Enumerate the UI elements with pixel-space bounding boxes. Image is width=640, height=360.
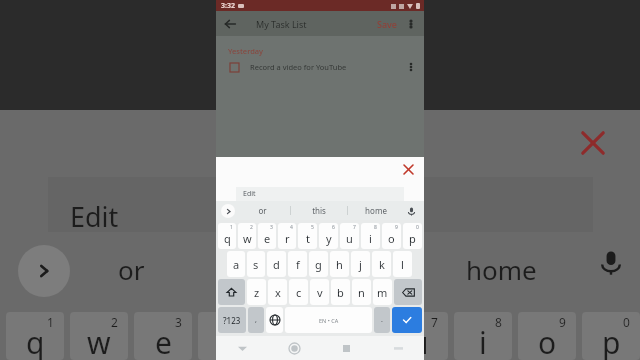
staticText: 2 xyxy=(250,224,253,231)
staticText: Edit xyxy=(243,189,256,199)
staticText: p xyxy=(409,231,416,246)
button[interactable]: s xyxy=(247,251,265,277)
staticText: y xyxy=(347,322,363,360)
button[interactable]: 5 xyxy=(298,223,317,249)
staticText: 7 xyxy=(353,224,356,231)
staticText: 6 xyxy=(367,314,374,330)
button[interactable]: k xyxy=(372,251,391,277)
button[interactable]: g xyxy=(309,251,328,277)
staticText: e xyxy=(264,231,271,246)
button[interactable]: Done xyxy=(392,307,422,333)
button[interactable]: x xyxy=(268,279,287,305)
button[interactable]: 6 xyxy=(319,223,338,249)
staticText: c xyxy=(296,285,302,300)
staticText: Save xyxy=(377,18,398,30)
button[interactable]: this xyxy=(291,201,347,220)
button[interactable]: m xyxy=(373,279,392,305)
button[interactable]: f xyxy=(288,251,307,277)
button[interactable]: Voice input xyxy=(404,204,418,218)
staticText: l xyxy=(401,257,404,272)
button[interactable]: EN • CA xyxy=(285,307,372,333)
staticText: s xyxy=(253,257,259,272)
button[interactable]: Task checkbox xyxy=(216,56,424,78)
button[interactable]: ?123 xyxy=(218,307,246,333)
staticText: d xyxy=(273,257,280,272)
button[interactable]: home xyxy=(348,201,404,220)
button[interactable]: 0 xyxy=(403,223,422,249)
button[interactable]: Save xyxy=(375,15,400,33)
button[interactable]: 3 xyxy=(258,223,276,249)
button[interactable]: 7 xyxy=(340,223,359,249)
button[interactable]: Home xyxy=(268,336,320,360)
button[interactable]: l xyxy=(393,251,412,277)
button[interactable]: 9 xyxy=(382,223,401,249)
button[interactable]: Back xyxy=(220,14,240,34)
button[interactable]: Recents xyxy=(320,336,372,360)
button[interactable]: Backspace xyxy=(394,279,422,305)
button[interactable]: a xyxy=(227,251,245,277)
staticText: w xyxy=(243,231,252,246)
button[interactable]: 2 xyxy=(238,223,256,249)
staticText: z xyxy=(254,285,260,300)
staticText: x xyxy=(275,285,281,300)
staticText: r xyxy=(285,231,290,246)
button[interactable]: 4 xyxy=(278,223,296,249)
button[interactable]: Task checkbox xyxy=(230,63,239,72)
staticText: or xyxy=(118,252,145,287)
button[interactable]: j xyxy=(351,251,370,277)
button[interactable]: Keyboard layout xyxy=(372,336,424,360)
staticText: , xyxy=(255,315,257,325)
button[interactable]: Change language xyxy=(266,307,283,333)
staticText: 9 xyxy=(395,224,398,231)
staticText: 1 xyxy=(230,224,233,231)
staticText: Edit xyxy=(70,198,119,235)
staticText: m xyxy=(377,285,388,300)
button[interactable]: Expand suggestions xyxy=(221,204,235,218)
staticText: n xyxy=(358,285,365,300)
button[interactable]: More options xyxy=(402,15,420,33)
staticText: . xyxy=(381,315,383,325)
button[interactable]: v xyxy=(310,279,329,305)
button[interactable]: c xyxy=(289,279,308,305)
staticText: q xyxy=(26,322,45,360)
staticText: Record a video for YouTube xyxy=(250,62,347,72)
staticText: home xyxy=(466,252,537,287)
button[interactable]: b xyxy=(331,279,350,305)
button[interactable]: Period xyxy=(374,307,390,333)
staticText: this xyxy=(312,205,326,216)
staticText: 3:32 xyxy=(221,1,235,11)
button[interactable]: Task options xyxy=(403,59,419,75)
button[interactable]: Hide keyboard xyxy=(216,336,268,360)
staticText: My Task List xyxy=(256,18,307,30)
staticText: t xyxy=(306,231,310,246)
button[interactable]: Shift xyxy=(218,279,245,305)
button[interactable]: d xyxy=(267,251,286,277)
button[interactable]: z xyxy=(247,279,266,305)
staticText: ?123 xyxy=(223,315,241,326)
button[interactable]: n xyxy=(352,279,371,305)
button[interactable]: Close xyxy=(401,162,415,176)
button[interactable]: or xyxy=(235,201,290,220)
staticText: 4 xyxy=(239,314,246,330)
staticText: 9 xyxy=(559,314,566,330)
staticText: h xyxy=(336,257,343,272)
staticText: v xyxy=(317,285,323,300)
button[interactable]: 8 xyxy=(361,223,380,249)
staticText: 3 xyxy=(175,314,182,330)
staticText: e xyxy=(155,322,172,360)
staticText: t xyxy=(286,322,297,360)
button[interactable]: 1 xyxy=(218,223,236,249)
button[interactable]: Comma xyxy=(248,307,264,333)
staticText: or xyxy=(258,205,267,216)
staticText: 4 xyxy=(290,224,293,231)
staticText: 0 xyxy=(416,224,419,231)
staticText: u xyxy=(346,231,353,246)
button[interactable]: h xyxy=(330,251,349,277)
staticText: r xyxy=(221,322,234,360)
staticText: y xyxy=(326,231,332,246)
staticText: p xyxy=(602,322,621,360)
staticText: 1 xyxy=(47,314,54,330)
staticText: b xyxy=(337,285,344,300)
staticText: 8 xyxy=(495,314,502,330)
